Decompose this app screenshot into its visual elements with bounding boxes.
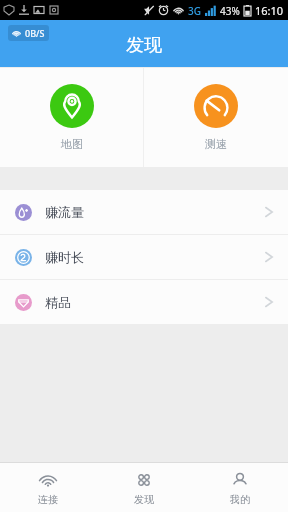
staticText: 地图 bbox=[61, 137, 83, 151]
staticText: 我的 bbox=[230, 493, 250, 506]
button[interactable]: 赚流量 bbox=[0, 190, 288, 234]
staticText: 43% bbox=[220, 4, 240, 18]
staticText: 发现 bbox=[134, 493, 154, 506]
staticText: 16:10 bbox=[255, 3, 284, 18]
button[interactable]: 连接 bbox=[0, 463, 96, 512]
button[interactable]: 地图 bbox=[0, 68, 143, 167]
staticText: 测速 bbox=[205, 137, 227, 151]
staticText: 3G bbox=[188, 4, 201, 18]
button[interactable]: 精品 bbox=[0, 280, 288, 324]
staticText: 赚流量 bbox=[45, 204, 84, 220]
button[interactable]: 发现 bbox=[96, 463, 192, 512]
button[interactable]: 赚时长 bbox=[0, 235, 288, 279]
staticText: 发现 bbox=[126, 34, 162, 57]
staticText: 0B/S bbox=[25, 27, 45, 39]
staticText: 赚时长 bbox=[45, 249, 84, 265]
button[interactable]: Network speed bbox=[12, 27, 45, 39]
staticText: 精品 bbox=[45, 294, 71, 310]
button[interactable]: 我的 bbox=[192, 463, 288, 512]
staticText: 连接 bbox=[38, 493, 58, 506]
button[interactable]: 测速 bbox=[144, 68, 288, 167]
